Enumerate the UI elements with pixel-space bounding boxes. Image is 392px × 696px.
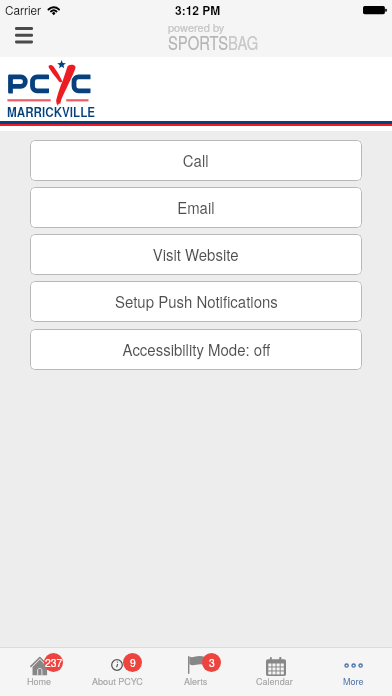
staticText: MARRICKVILLE	[7, 103, 96, 121]
staticText: About PCYC	[92, 675, 143, 688]
button[interactable]: Email	[30, 187, 362, 228]
staticText: Visit Website	[153, 243, 239, 266]
button[interactable]: 237	[0, 648, 78, 696]
button[interactable]: 9	[78, 648, 156, 696]
button[interactable]: More	[314, 648, 392, 696]
button[interactable]: Calendar	[235, 648, 313, 696]
staticText: Email	[177, 196, 215, 219]
staticText: Carrier	[5, 1, 42, 18]
staticText: 3	[209, 655, 215, 670]
staticText: 237	[45, 655, 63, 670]
staticText: 3:12 PM	[175, 1, 221, 18]
button[interactable]: Open navigation menu	[4, 21, 44, 49]
staticText: Accessibility Mode: off	[123, 338, 270, 361]
staticText: More	[343, 675, 364, 688]
staticText: 9	[130, 655, 136, 670]
button[interactable]: Accessibility Mode: off	[30, 329, 362, 370]
staticText: Setup Push Notifications	[115, 290, 278, 313]
staticText: Call	[183, 149, 209, 172]
staticText: Alerts	[184, 675, 208, 688]
button[interactable]: Call	[30, 140, 362, 181]
staticText: SPORTS	[168, 28, 229, 55]
button[interactable]: 3	[157, 648, 235, 696]
staticText: BAG	[228, 28, 259, 55]
button[interactable]: Setup Push Notifications	[30, 281, 362, 322]
staticText: powered by	[168, 19, 225, 35]
staticText: Home	[27, 675, 52, 688]
staticText: Calendar	[256, 675, 293, 688]
button[interactable]: Visit Website	[30, 234, 362, 275]
